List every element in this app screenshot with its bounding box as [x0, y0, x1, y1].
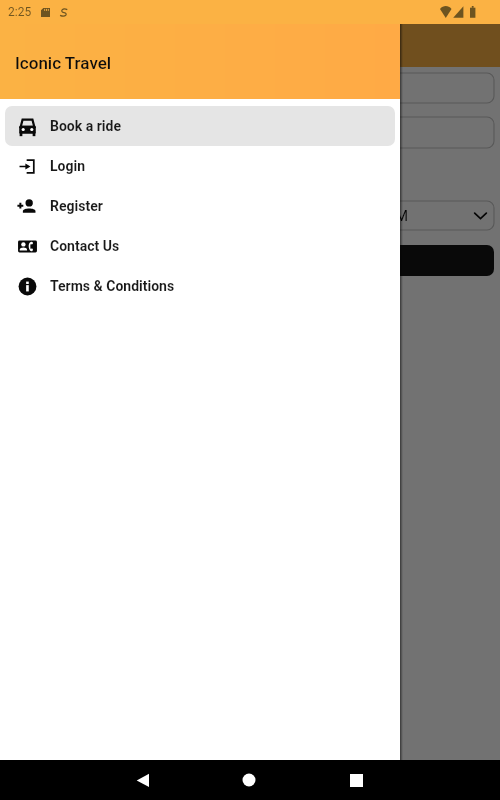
staticText: Login [50, 158, 86, 174]
staticText: Iconic Travel [15, 53, 112, 73]
button[interactable]: Terms & Conditions [5, 266, 395, 306]
button[interactable]: Register [5, 186, 395, 226]
staticText: Contact Us [50, 238, 120, 254]
button[interactable]: Contact Us [5, 226, 395, 266]
button[interactable]: Book a ride [5, 106, 395, 146]
staticText: Terms & Conditions [50, 278, 175, 294]
button[interactable]: Home [229, 760, 269, 800]
staticText: Book a ride [50, 118, 122, 134]
staticText: Select pickup time 07:00 AM [218, 207, 409, 225]
staticText: Register [50, 198, 103, 214]
staticText: 2:25 [8, 5, 32, 19]
button[interactable]: Back [123, 760, 163, 800]
button[interactable] [16, 245, 494, 276]
button[interactable]: Login [5, 146, 395, 186]
button[interactable]: Recent apps [336, 760, 376, 800]
